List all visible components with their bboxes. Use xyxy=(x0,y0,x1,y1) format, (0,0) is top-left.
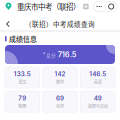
button[interactable]: Mini program xyxy=(82,3,89,10)
button[interactable]: 69 xyxy=(43,91,77,112)
staticText: 成绩信息 xyxy=(9,34,37,44)
button[interactable]: 142 xyxy=(43,67,77,88)
staticText: 总分 xyxy=(46,52,56,58)
staticText: 142 xyxy=(54,70,65,78)
staticText: 69 xyxy=(56,94,64,102)
staticText: 重庆市中考（联招） xyxy=(17,1,80,12)
staticText: 物理 xyxy=(18,103,26,109)
button[interactable]: Back xyxy=(3,18,13,30)
staticText: 49 xyxy=(94,94,102,102)
button[interactable]: 146.5 xyxy=(80,67,115,88)
staticText: 146.5 xyxy=(89,70,106,78)
button[interactable]: 133.5 xyxy=(5,67,39,88)
staticText: （联招）中考成绩查询 xyxy=(25,19,95,29)
staticText: 133.5 xyxy=(14,70,31,78)
staticText: 英语 xyxy=(94,79,102,85)
staticText: 道德与法治 xyxy=(88,103,108,109)
staticText: 化学 xyxy=(56,103,64,109)
button[interactable]: 49 xyxy=(80,91,115,112)
staticText: 语文 xyxy=(18,79,26,85)
staticText: 716.5 xyxy=(58,50,77,59)
staticText: 79 xyxy=(18,94,26,102)
staticText: 数学 xyxy=(56,79,64,85)
button[interactable]: Close xyxy=(105,2,117,11)
button[interactable]: 79 xyxy=(5,91,39,112)
button[interactable]: More xyxy=(93,2,105,11)
